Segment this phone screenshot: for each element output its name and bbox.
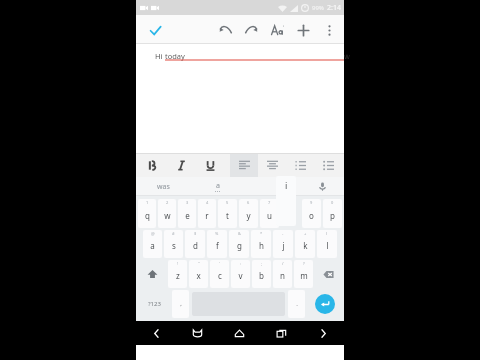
button[interactable]: / [273, 260, 292, 288]
staticText: " [198, 261, 200, 266]
button[interactable]: ?123 [138, 290, 170, 318]
button[interactable]: * [251, 230, 271, 258]
staticText: 4 [206, 200, 209, 205]
staticText: g [237, 240, 242, 251]
staticText: n [280, 270, 285, 281]
button[interactable] [245, 177, 300, 196]
button[interactable]: Align left [230, 153, 258, 177]
button[interactable]: Underline [196, 153, 225, 177]
staticText: & [238, 231, 241, 236]
button[interactable]: Bulleted list [314, 153, 342, 177]
staticText: : [240, 261, 242, 266]
button[interactable]: 2 [158, 199, 176, 228]
button[interactable]: Undo [212, 17, 238, 43]
staticText: ' [219, 261, 220, 266]
button[interactable]: 7 [260, 199, 279, 228]
button[interactable]: " [189, 260, 208, 288]
button[interactable]: 6 [239, 199, 258, 228]
staticText: 2 [166, 200, 169, 205]
button[interactable]: 9 [302, 199, 321, 228]
staticText: ; [261, 261, 263, 266]
staticText: + [304, 231, 307, 236]
staticText: 2:14 [327, 3, 341, 13]
staticText: # [172, 231, 175, 236]
staticText: c [218, 270, 222, 281]
button[interactable]: Redo [238, 17, 264, 43]
button[interactable]: % [207, 230, 227, 258]
button[interactable]: - [273, 230, 293, 258]
staticText: h [259, 240, 264, 251]
staticText: b [259, 270, 264, 281]
button[interactable]: 4 [198, 199, 216, 228]
staticText: 7 [268, 200, 271, 205]
button[interactable]: 5 [218, 199, 237, 228]
staticText: % [215, 231, 219, 236]
button[interactable]: Align center [258, 153, 286, 177]
button[interactable]: Text formatting [264, 17, 290, 43]
staticText: f [216, 240, 219, 251]
button[interactable]: was [136, 177, 190, 196]
button[interactable]: Voice input [300, 177, 344, 196]
button[interactable]: $ [185, 230, 205, 258]
staticText: $ [194, 231, 197, 236]
button[interactable]: # [164, 230, 183, 258]
staticText: d [193, 240, 198, 251]
staticText: today [165, 51, 185, 61]
button[interactable]: 0 [323, 199, 342, 228]
staticText: ?123 [148, 300, 161, 308]
button[interactable]: ? [294, 260, 313, 288]
staticText: was [157, 182, 170, 192]
staticText: 5 [226, 200, 229, 205]
button[interactable]: ; [252, 260, 271, 288]
staticText: a [150, 240, 155, 251]
staticText: 3 [186, 200, 189, 205]
staticText: - [282, 231, 284, 236]
staticText: Hi [155, 51, 165, 61]
staticText: 99% [312, 4, 324, 12]
staticText: ! [177, 261, 179, 266]
staticText: . [296, 300, 298, 308]
button[interactable]: 3 [178, 199, 196, 228]
staticText: a [216, 181, 220, 191]
button[interactable]: Keyboard hide [177, 321, 218, 345]
button[interactable]: Enter [315, 294, 335, 314]
button[interactable]: Forward [302, 321, 344, 345]
staticText: v [238, 270, 243, 281]
button[interactable]: , [172, 290, 189, 318]
button[interactable]: Home [218, 321, 260, 345]
staticText: i [285, 179, 288, 191]
staticText: * [260, 231, 263, 236]
button[interactable]: Back [136, 321, 177, 345]
staticText: m [300, 270, 308, 281]
staticText: t [226, 210, 229, 221]
button[interactable]: 1 [138, 199, 156, 228]
button[interactable]: Bold [138, 153, 167, 177]
button[interactable]: @ [143, 230, 162, 258]
staticText: 6 [247, 200, 250, 205]
button[interactable]: + [295, 230, 315, 258]
staticText: o [309, 210, 314, 221]
button[interactable]: Recents [260, 321, 302, 345]
button[interactable]: Insert [290, 17, 316, 43]
staticText: 1 [146, 200, 149, 205]
button[interactable]: Italic [167, 153, 196, 177]
button[interactable]: Shift [138, 260, 166, 288]
button[interactable]: a [190, 177, 245, 196]
staticText: ( [326, 231, 328, 236]
staticText: p [330, 210, 335, 221]
button[interactable]: ! [168, 260, 187, 288]
button[interactable]: Backspace [315, 260, 342, 288]
button[interactable]: : [231, 260, 250, 288]
button[interactable]: More options [316, 17, 342, 43]
button[interactable]: Numbered list [286, 153, 314, 177]
staticText: l [326, 240, 329, 251]
button[interactable]: ( [317, 230, 337, 258]
button[interactable]: Done [142, 17, 168, 43]
staticText: , [180, 300, 182, 308]
button[interactable]: ' [210, 260, 229, 288]
button[interactable]: & [229, 230, 249, 258]
staticText: 9 [310, 200, 313, 205]
staticText: x [196, 270, 201, 281]
